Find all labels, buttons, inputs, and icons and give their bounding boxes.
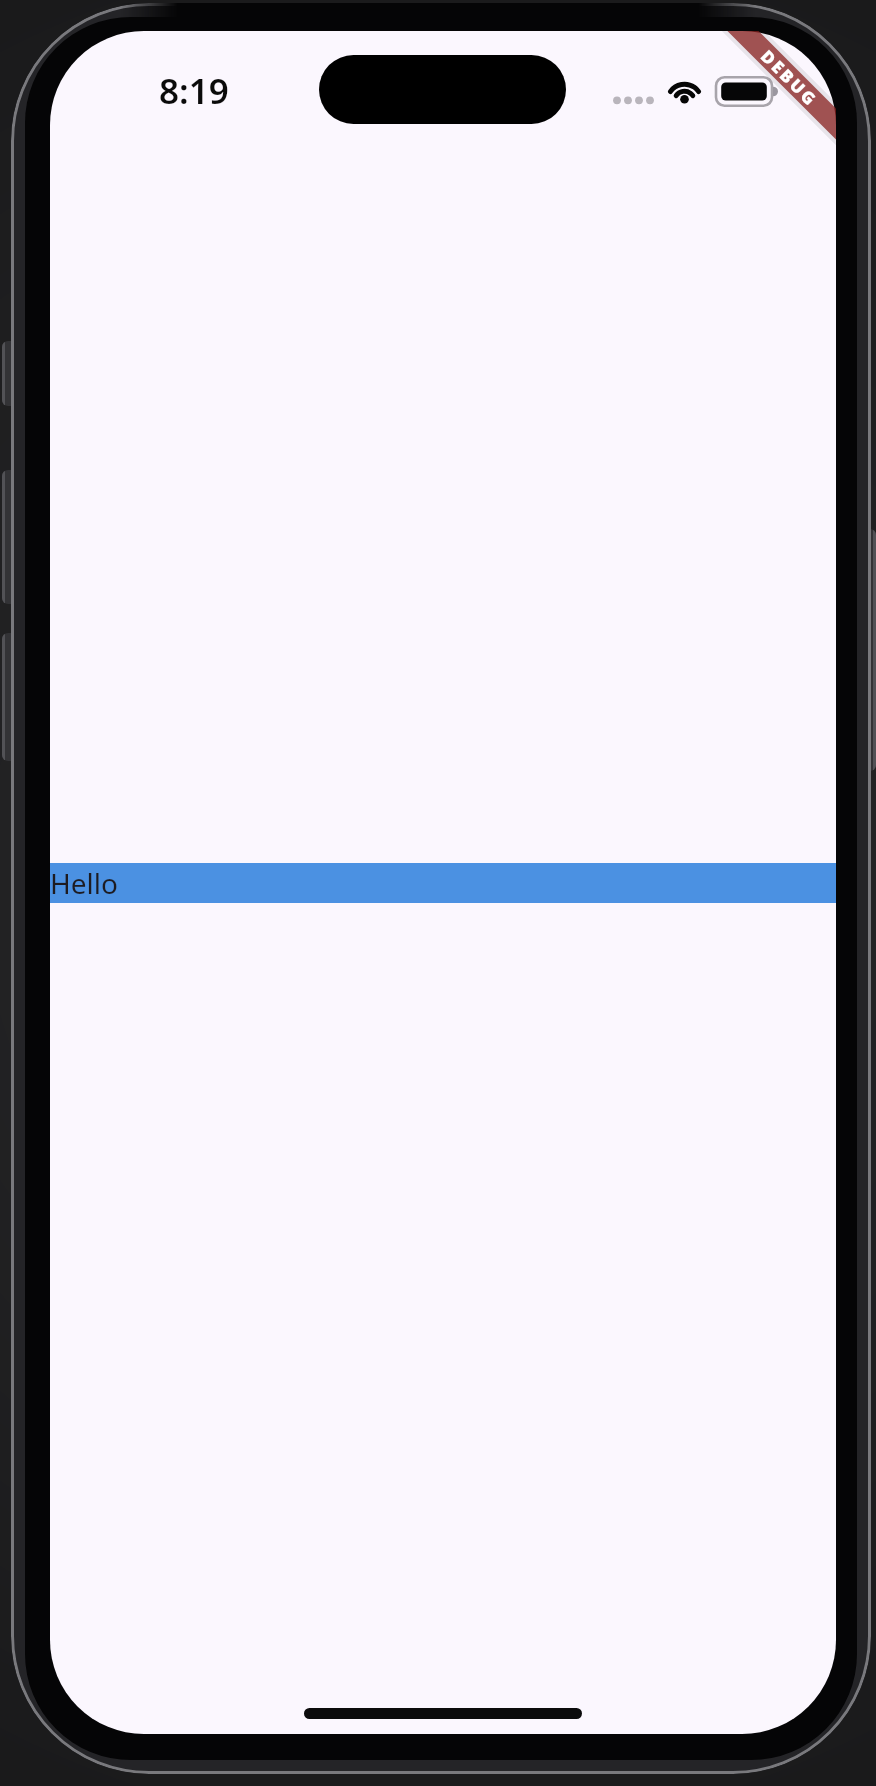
staticText: DEBUG <box>757 45 823 111</box>
staticText: 8:19 <box>159 67 229 115</box>
button[interactable]: Hello <box>50 863 836 903</box>
staticText: Hello <box>50 864 118 902</box>
button[interactable]: DEBUG <box>665 31 836 202</box>
